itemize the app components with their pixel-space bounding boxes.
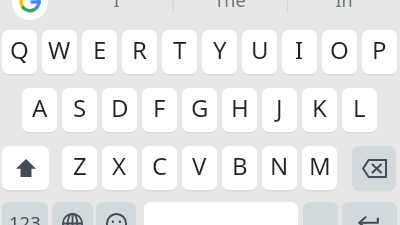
staticText: W <box>48 33 71 66</box>
staticText: J <box>276 91 283 124</box>
button[interactable]: I <box>282 30 317 74</box>
button[interactable]: In <box>294 0 394 13</box>
button[interactable]: Backspace <box>352 146 396 190</box>
button[interactable]: H <box>222 88 257 132</box>
button[interactable]: A <box>22 88 57 132</box>
button[interactable]: N <box>262 146 297 190</box>
staticText: H <box>231 91 249 124</box>
button[interactable]: F <box>142 88 177 132</box>
staticText: P <box>372 33 387 66</box>
staticText: Z <box>73 149 87 182</box>
staticText: O <box>330 33 349 66</box>
button[interactable]: U <box>242 30 277 74</box>
staticText: R <box>132 33 147 66</box>
button[interactable]: 123 <box>2 202 48 225</box>
staticText: 123 <box>9 210 41 225</box>
staticText: D <box>111 91 129 124</box>
staticText: In <box>335 0 353 13</box>
button[interactable]: C <box>142 146 177 190</box>
button[interactable]: . <box>303 202 338 225</box>
staticText: G <box>191 91 209 124</box>
button[interactable]: I <box>66 0 166 13</box>
button[interactable]: P <box>362 30 397 74</box>
staticText: L <box>353 91 366 124</box>
button[interactable]: M <box>302 146 337 190</box>
staticText: A <box>32 91 48 124</box>
button[interactable]: R <box>122 30 157 74</box>
button[interactable]: X <box>102 146 137 190</box>
button[interactable]: Change language <box>52 202 93 225</box>
staticText: Q <box>10 33 29 66</box>
button[interactable]: K <box>302 88 337 132</box>
staticText: I <box>113 0 120 13</box>
button[interactable]: The <box>180 0 280 13</box>
button[interactable]: W <box>42 30 77 74</box>
button[interactable]: Y <box>202 30 237 74</box>
staticText: B <box>232 149 248 182</box>
button[interactable]: Google search <box>12 0 48 20</box>
staticText: M <box>309 149 331 182</box>
staticText: V <box>192 149 207 182</box>
staticText: E <box>93 33 107 66</box>
button[interactable]: Enter <box>342 202 397 225</box>
staticText: N <box>270 149 289 182</box>
button[interactable]: D <box>102 88 137 132</box>
button[interactable]: O <box>322 30 357 74</box>
button[interactable]: V <box>182 146 217 190</box>
button[interactable]: G <box>182 88 217 132</box>
button[interactable]: E <box>82 30 117 74</box>
staticText: C <box>152 149 168 182</box>
button[interactable]: S <box>62 88 97 132</box>
staticText: T <box>173 33 187 66</box>
staticText: K <box>312 91 327 124</box>
staticText: I <box>295 33 304 66</box>
button[interactable]: Shift <box>2 146 49 190</box>
staticText: S <box>73 91 87 124</box>
button[interactable]: Emoji <box>96 202 136 225</box>
button[interactable]: Z <box>62 146 97 190</box>
button[interactable]: Q <box>2 30 37 74</box>
button[interactable]: B <box>222 146 257 190</box>
staticText: U <box>251 33 269 66</box>
staticText: The <box>214 0 246 13</box>
staticText: X <box>112 149 127 182</box>
button[interactable]: J <box>262 88 297 132</box>
button[interactable]: L <box>342 88 377 132</box>
staticText: F <box>153 91 166 124</box>
staticText: Y <box>213 33 227 66</box>
button[interactable]: T <box>162 30 197 74</box>
